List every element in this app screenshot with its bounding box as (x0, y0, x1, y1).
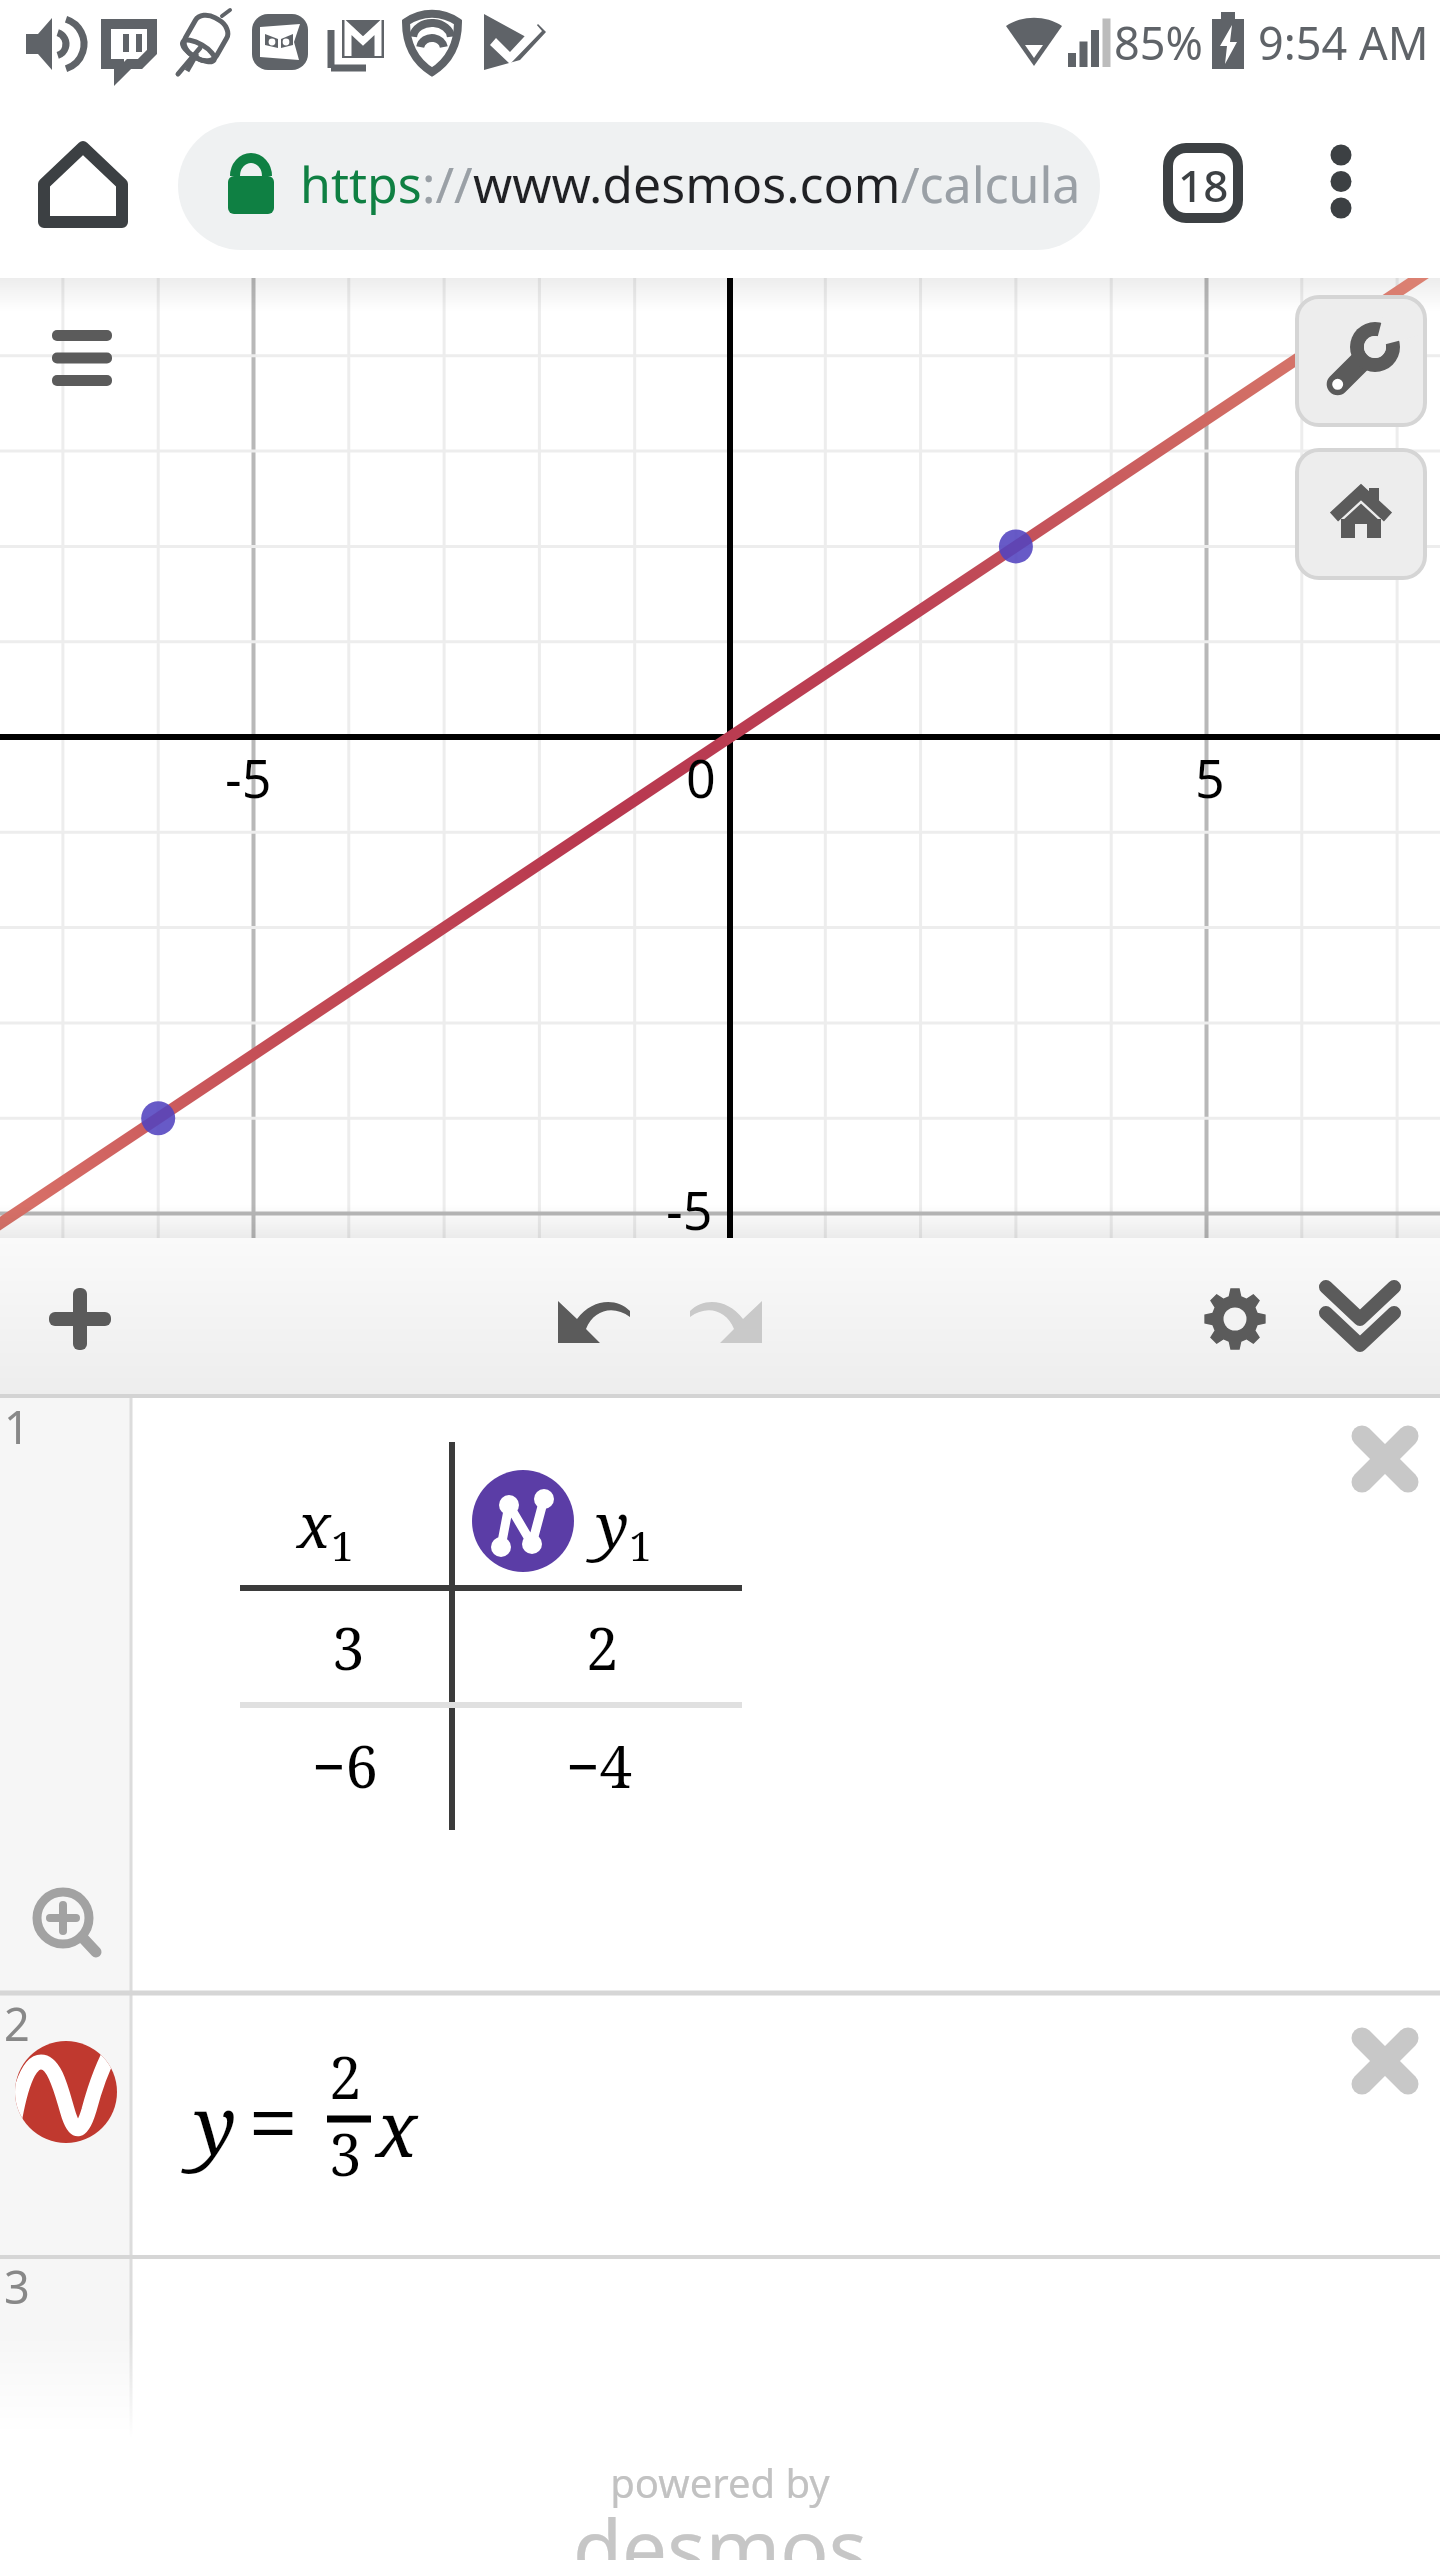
button[interactable]: Collapse keypad (1298, 1258, 1423, 1383)
staticText: 3 (332, 1608, 365, 1687)
button[interactable]: Default viewport (1297, 450, 1425, 578)
button[interactable]: Tabs, 18 open (1140, 124, 1264, 248)
staticText: -5 (666, 1174, 713, 1245)
staticText: −4 (566, 1726, 633, 1805)
staticText: 3 (4, 2256, 30, 2317)
button[interactable] (178, 122, 1100, 250)
staticText: powered by (0, 2455, 1440, 2509)
staticText: y (596, 1482, 629, 1566)
staticText: 5 (1195, 742, 1225, 813)
staticText: 2 (586, 1608, 619, 1687)
staticText: 1 (629, 1517, 652, 1573)
button[interactable]: Delete row 2 (1335, 2010, 1440, 2116)
staticText: desmos (0, 2492, 1440, 2560)
button[interactable]: Graph settings (1297, 297, 1425, 425)
staticText: :// (422, 150, 473, 218)
button[interactable]: Redo (662, 1258, 787, 1383)
button[interactable] (0, 1995, 1440, 2257)
staticText: /calcula (901, 150, 1081, 218)
button[interactable]: Settings (1173, 1258, 1298, 1383)
button[interactable] (0, 2258, 1440, 2438)
staticText: x (297, 1482, 331, 1566)
staticText: 2 (329, 2037, 362, 2116)
staticText: 85% (1114, 12, 1203, 73)
button[interactable]: Zoom to fit (16, 1860, 120, 1964)
staticText: 3 (329, 2114, 362, 2193)
staticText: www.desmos.com (473, 150, 901, 218)
button[interactable]: Delete row 1 (1335, 1408, 1440, 1514)
staticText: https (300, 150, 422, 218)
button[interactable]: More options (1280, 124, 1404, 248)
button[interactable]: Home (28, 128, 148, 248)
button[interactable]: Undo (532, 1258, 657, 1383)
button[interactable]: Menu (32, 310, 132, 410)
staticText: 0 (686, 742, 716, 813)
button[interactable]: Curve style (16, 2042, 116, 2142)
staticText: −6 (312, 1726, 379, 1805)
staticText: 18 (1178, 155, 1229, 215)
staticText: -5 (225, 742, 272, 813)
staticText: = (248, 2060, 299, 2183)
staticText: 1 (331, 1517, 354, 1573)
button[interactable]: Add expression (20, 1258, 145, 1383)
staticText: y (194, 2069, 237, 2178)
button[interactable] (0, 1398, 1440, 1992)
staticText: 1 (4, 1396, 30, 1457)
staticText: 9:54 AM (1258, 12, 1429, 73)
staticText: 2 (4, 1993, 30, 2054)
staticText: x (376, 2076, 418, 2180)
button[interactable]: Table style (473, 1471, 573, 1571)
